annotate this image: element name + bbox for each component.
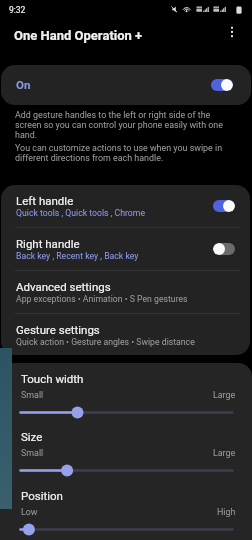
staticText: Add gesture handles to the left or right…: [15, 110, 223, 140]
staticText: Advanced settings: [16, 280, 111, 293]
staticText: Quick action • Gesture angles • Swipe di…: [16, 337, 195, 347]
staticText: High: [217, 507, 236, 517]
button[interactable]: More options: [221, 21, 243, 43]
button[interactable]: Gesture settings: [1, 314, 250, 355]
staticText: 9:32: [9, 5, 26, 15]
button[interactable]: Off: [213, 243, 235, 255]
staticText: On: [16, 78, 31, 91]
button[interactable]: Size: [15, 464, 238, 477]
button[interactable]: On: [211, 79, 233, 91]
staticText: Large: [213, 448, 236, 458]
staticText: Low: [21, 507, 38, 517]
staticText: App exceptions • Animation • S Pen gestu…: [16, 294, 188, 304]
button[interactable]: Touch width: [15, 406, 238, 419]
staticText: Right handle: [16, 237, 80, 250]
staticText: Large: [213, 390, 236, 400]
staticText: Small: [21, 448, 44, 458]
staticText: Small: [21, 390, 44, 400]
staticText: Touch width: [21, 372, 84, 385]
staticText: Size: [21, 430, 43, 443]
button[interactable]: Position: [15, 523, 238, 536]
staticText: Position: [21, 489, 63, 502]
staticText: Gesture settings: [16, 323, 100, 336]
staticText: You can customize actions to use when yo…: [15, 143, 223, 163]
button[interactable]: Right handle: [1, 228, 250, 270]
staticText: Quick tools , Quick tools , Chrome: [16, 208, 146, 218]
staticText: Left handle: [16, 194, 74, 207]
button[interactable]: On: [213, 200, 235, 212]
button[interactable]: Left handle: [1, 185, 250, 227]
button[interactable]: Advanced settings: [1, 271, 250, 313]
button[interactable]: On: [1, 65, 251, 105]
staticText: Back key , Recent key , Back key: [16, 251, 139, 261]
staticText: One Hand Operation +: [14, 28, 143, 43]
